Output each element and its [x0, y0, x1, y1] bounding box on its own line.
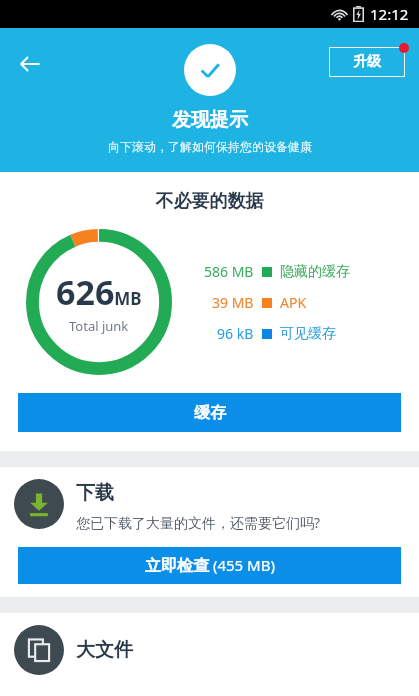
staticText: 39 MB	[212, 293, 254, 312]
staticText: Total junk	[69, 317, 129, 335]
staticText: 下载	[76, 481, 114, 505]
staticText: 立即检查 (455 MB)	[145, 555, 275, 576]
button[interactable]: 缓存	[18, 393, 401, 432]
staticText: 向下滚动，了解如何保持您的设备健康	[108, 139, 312, 154]
staticText: 不必要的数据	[0, 190, 419, 213]
staticText: 可见缓存	[280, 325, 336, 343]
staticText: 大文件	[76, 638, 133, 662]
button[interactable]: 立即检查 (455 MB)	[18, 547, 401, 584]
staticText: 升级	[353, 53, 381, 71]
button[interactable]: 大文件	[0, 613, 419, 696]
button[interactable]: Back	[6, 40, 54, 88]
button[interactable]: 下载	[0, 467, 419, 597]
staticText: 缓存	[194, 403, 226, 423]
staticText: 隐藏的缓存	[280, 263, 350, 281]
staticText: 12:12	[370, 4, 409, 24]
staticText: APK	[280, 293, 307, 312]
staticText: 96 kB	[217, 324, 254, 343]
staticText: 发现提示	[172, 108, 248, 132]
staticText: 626MB	[56, 269, 142, 315]
staticText: 您已下载了大量的文件，还需要它们吗?	[76, 513, 321, 532]
button[interactable]: 升级	[329, 47, 405, 77]
staticText: 586 MB	[204, 262, 254, 281]
